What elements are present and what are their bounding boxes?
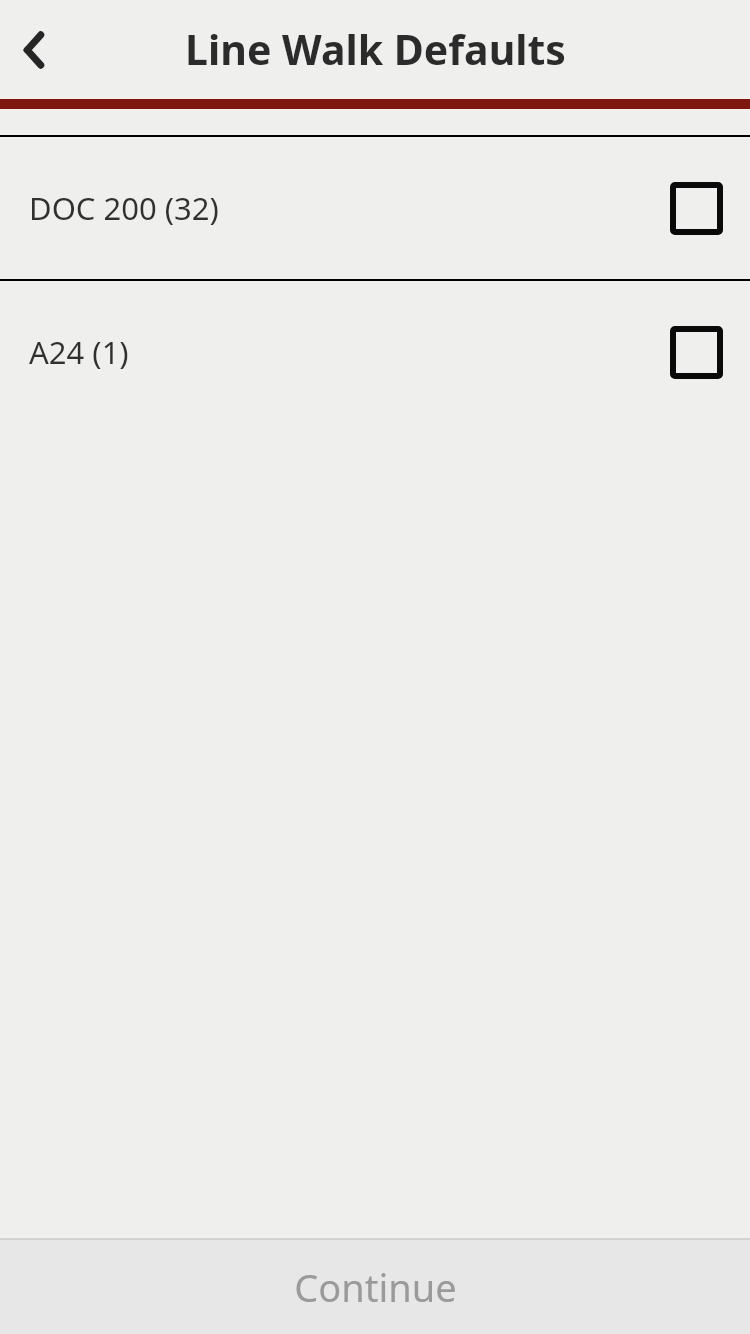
staticText: Line Walk Defaults <box>185 21 566 77</box>
staticText: Continue <box>294 1261 457 1313</box>
staticText: DOC 200 (32) <box>29 187 219 229</box>
other: Select A24 (1) <box>670 326 723 379</box>
staticText: A24 (1) <box>29 331 129 373</box>
button[interactable]: Back <box>0 14 72 86</box>
button[interactable]: A24 (1) <box>0 281 750 423</box>
button[interactable]: Continue <box>0 1240 750 1334</box>
button[interactable]: DOC 200 (32) <box>0 137 750 279</box>
other: Select DOC 200 (32) <box>670 182 723 235</box>
